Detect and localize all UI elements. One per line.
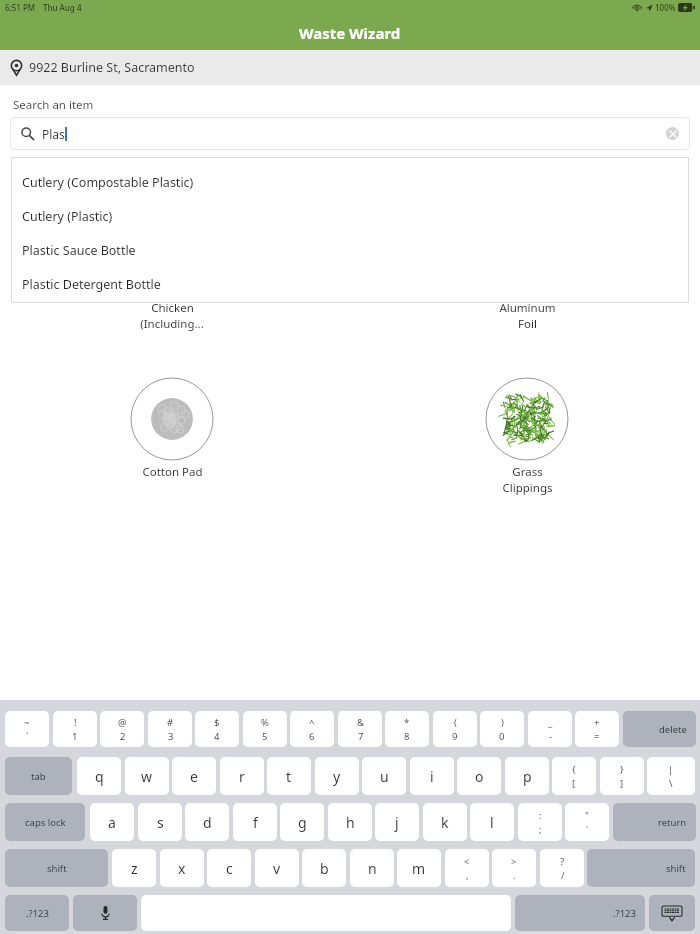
button[interactable]: ! — [53, 711, 97, 747]
button[interactable]: Hide keyboard — [649, 895, 695, 931]
button[interactable]: > — [492, 849, 536, 887]
button[interactable]: s — [138, 803, 182, 841]
staticText: & — [357, 716, 364, 729]
button[interactable]: e — [172, 757, 216, 795]
button[interactable]: z — [112, 849, 156, 887]
button[interactable]: v — [255, 849, 299, 887]
button[interactable]: # — [148, 711, 192, 747]
button[interactable]: h — [328, 803, 372, 841]
button[interactable]: % — [243, 711, 287, 747]
button[interactable]: c — [207, 849, 251, 887]
staticText: (Including... — [140, 316, 204, 332]
staticText: Foil — [518, 316, 537, 332]
button[interactable]: " — [565, 803, 609, 841]
button[interactable]: ^ — [290, 711, 334, 747]
button[interactable]: { — [552, 757, 596, 795]
button[interactable]: Cutlery (Compostable Plastic) — [11, 165, 689, 199]
button[interactable]: .?123 — [515, 895, 645, 931]
staticText: a — [108, 813, 116, 832]
button[interactable]: n — [350, 849, 394, 887]
staticText: l — [490, 813, 494, 832]
staticText: % — [261, 716, 269, 729]
staticText: - — [549, 730, 553, 743]
button[interactable]: u — [362, 757, 406, 795]
staticText: d — [203, 813, 212, 832]
button[interactable]: ? — [540, 849, 584, 887]
staticText: ' — [586, 823, 589, 836]
button[interactable]: Grass — [467, 377, 587, 505]
staticText: Cutlery (Plastic) — [22, 208, 113, 225]
staticText: 4 — [214, 730, 220, 743]
staticText: n — [368, 859, 377, 878]
button[interactable]: Aluminum — [467, 213, 587, 341]
staticText: Plas — [42, 126, 65, 142]
button[interactable]: Cutlery (Plastic) — [11, 199, 689, 233]
staticText: 8 — [404, 730, 410, 743]
button[interactable]: * — [385, 711, 429, 747]
staticText: c — [226, 859, 233, 878]
button[interactable]: 9922 Burline St, Sacramento — [0, 50, 700, 85]
staticText: Plastic Sauce Bottle — [22, 242, 136, 259]
button[interactable]: f — [233, 803, 277, 841]
button[interactable]: ~ — [5, 711, 49, 747]
button[interactable]: l — [470, 803, 514, 841]
button[interactable]: w — [125, 757, 169, 795]
button[interactable]: a — [90, 803, 134, 841]
button[interactable]: .?123 — [5, 895, 69, 931]
staticText: \ — [669, 777, 673, 790]
button[interactable]: o — [457, 757, 501, 795]
button[interactable]: j — [375, 803, 419, 841]
button[interactable]: ( — [433, 711, 477, 747]
button[interactable]: Plas — [10, 117, 690, 150]
staticText: tab — [31, 770, 46, 783]
staticText: 5 — [262, 730, 268, 743]
button[interactable]: Cotton Pad — [112, 377, 232, 505]
button[interactable]: ) — [480, 711, 524, 747]
button[interactable]: Plastic Detergent Bottle — [11, 267, 689, 301]
button[interactable]: tab — [5, 757, 72, 795]
button[interactable]: & — [338, 711, 382, 747]
staticText: return — [658, 816, 687, 829]
button[interactable]: g — [280, 803, 324, 841]
button[interactable]: Dictation — [73, 895, 137, 931]
button[interactable]: i — [410, 757, 454, 795]
button[interactable]: d — [185, 803, 229, 841]
staticText: ` — [26, 730, 29, 743]
button[interactable]: Chicken — [112, 213, 232, 341]
button[interactable]: + — [575, 711, 619, 747]
staticText: $ — [214, 716, 220, 729]
staticText: delete — [659, 723, 687, 736]
staticText: 9922 Burline St, Sacramento — [29, 59, 195, 76]
button[interactable]: caps lock — [5, 803, 85, 841]
button[interactable]: Plastic Sauce Bottle — [11, 233, 689, 267]
button[interactable]: b — [302, 849, 346, 887]
button[interactable]: k — [423, 803, 467, 841]
button[interactable]: r — [220, 757, 264, 795]
button[interactable]: x — [160, 849, 204, 887]
button[interactable]: shift — [587, 849, 695, 887]
button[interactable]: return — [613, 803, 696, 841]
staticText: caps lock — [25, 816, 66, 829]
button[interactable]: t — [267, 757, 311, 795]
button[interactable]: < — [445, 849, 489, 887]
button[interactable]: : — [518, 803, 562, 841]
button[interactable]: _ — [528, 711, 572, 747]
button[interactable]: Clear search — [666, 127, 679, 140]
button[interactable]: shift — [5, 849, 108, 887]
staticText: v — [273, 859, 281, 878]
button[interactable]: q — [77, 757, 121, 795]
button[interactable]: m — [397, 849, 441, 887]
button[interactable]: delete — [623, 711, 696, 747]
staticText: ; — [539, 823, 542, 836]
button[interactable]: @ — [100, 711, 144, 747]
staticText: ] — [620, 777, 624, 790]
button[interactable]: p — [505, 757, 549, 795]
button[interactable]: } — [600, 757, 644, 795]
button[interactable]: $ — [195, 711, 239, 747]
button[interactable]: y — [315, 757, 359, 795]
staticText: f — [253, 813, 258, 832]
button[interactable]: | — [647, 757, 695, 795]
staticText: Thu Aug 4 — [43, 2, 82, 13]
staticText: .?123 — [26, 907, 49, 920]
